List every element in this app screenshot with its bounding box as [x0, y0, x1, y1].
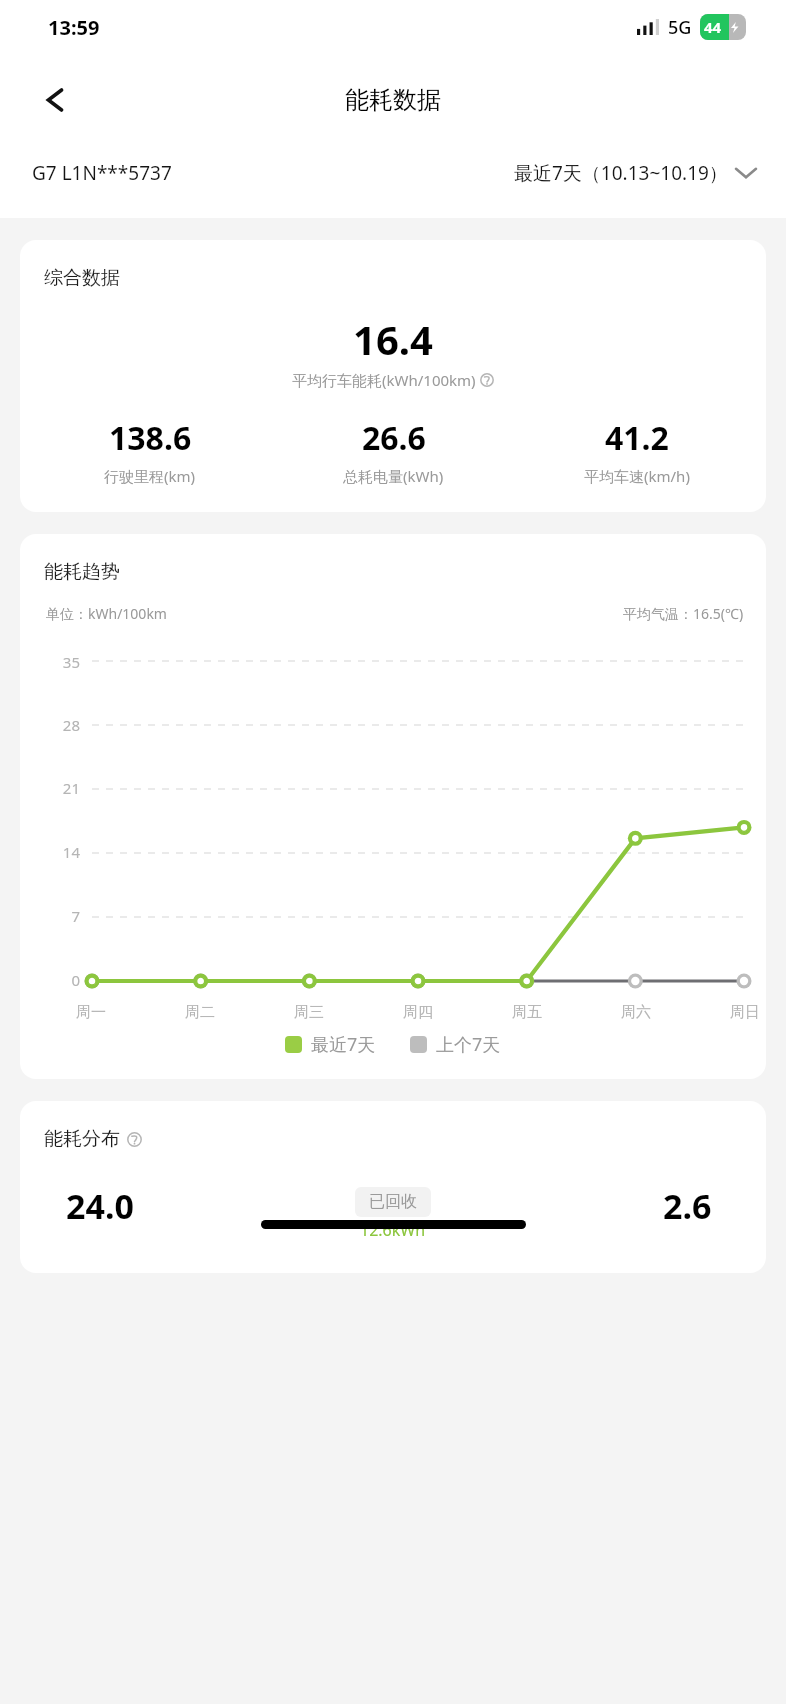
staticText: 26.6 — [362, 416, 426, 460]
staticText: 16.4 — [353, 312, 433, 366]
staticText: 能耗趋势 — [44, 560, 120, 584]
staticText: 最近7天（10.13~10.19） — [514, 160, 728, 186]
staticText: 138.6 — [109, 416, 192, 460]
staticText: 周四 — [403, 1003, 433, 1022]
staticText: 13:59 — [48, 14, 100, 41]
staticText: 21 — [62, 778, 80, 798]
staticText: 综合数据 — [44, 266, 120, 290]
staticText: 12.6kWh — [360, 1219, 426, 1241]
staticText: 35 — [62, 652, 80, 672]
staticText: 41.2 — [605, 416, 669, 460]
staticText: 28 — [62, 715, 80, 735]
staticText: 行驶里程(km) — [104, 466, 196, 486]
staticText: 已回收 — [369, 1192, 417, 1212]
staticText: 单位：kWh/100km — [46, 604, 167, 623]
staticText: 周三 — [294, 1003, 324, 1022]
staticText: 周日 — [730, 1003, 760, 1022]
staticText: 14 — [62, 842, 80, 862]
staticText: 平均车速(km/h) — [584, 466, 690, 486]
button[interactable]: 最近7天（10.13~10.19） — [510, 156, 760, 190]
staticText: 24.0 — [66, 1183, 134, 1229]
staticText: 上个7天 — [436, 1032, 501, 1057]
staticText: 周一 — [76, 1003, 106, 1022]
staticText: G7 L1N***5737 — [32, 160, 172, 186]
staticText: 0 — [71, 970, 80, 990]
staticText: 能耗数据 — [345, 85, 441, 115]
staticText: 周二 — [185, 1003, 215, 1022]
staticText: 44 — [704, 17, 722, 37]
staticText: 最近7天 — [311, 1032, 376, 1057]
staticText: 平均行车能耗(kWh/100km) — [292, 370, 476, 390]
staticText: 总耗电量(kWh) — [343, 466, 444, 486]
staticText: 7 — [71, 906, 80, 926]
staticText: 平均气温：16.5(℃) — [623, 604, 744, 623]
staticText: 5G — [668, 15, 692, 40]
button[interactable]: 最近7天 — [285, 1032, 376, 1057]
staticText: 能耗分布 — [44, 1127, 120, 1151]
staticText: 周五 — [512, 1003, 542, 1022]
button[interactable]: 上个7天 — [410, 1032, 501, 1057]
button[interactable]: Back — [30, 74, 82, 126]
staticText: 2.6 — [663, 1183, 712, 1229]
staticText: 周六 — [621, 1003, 651, 1022]
